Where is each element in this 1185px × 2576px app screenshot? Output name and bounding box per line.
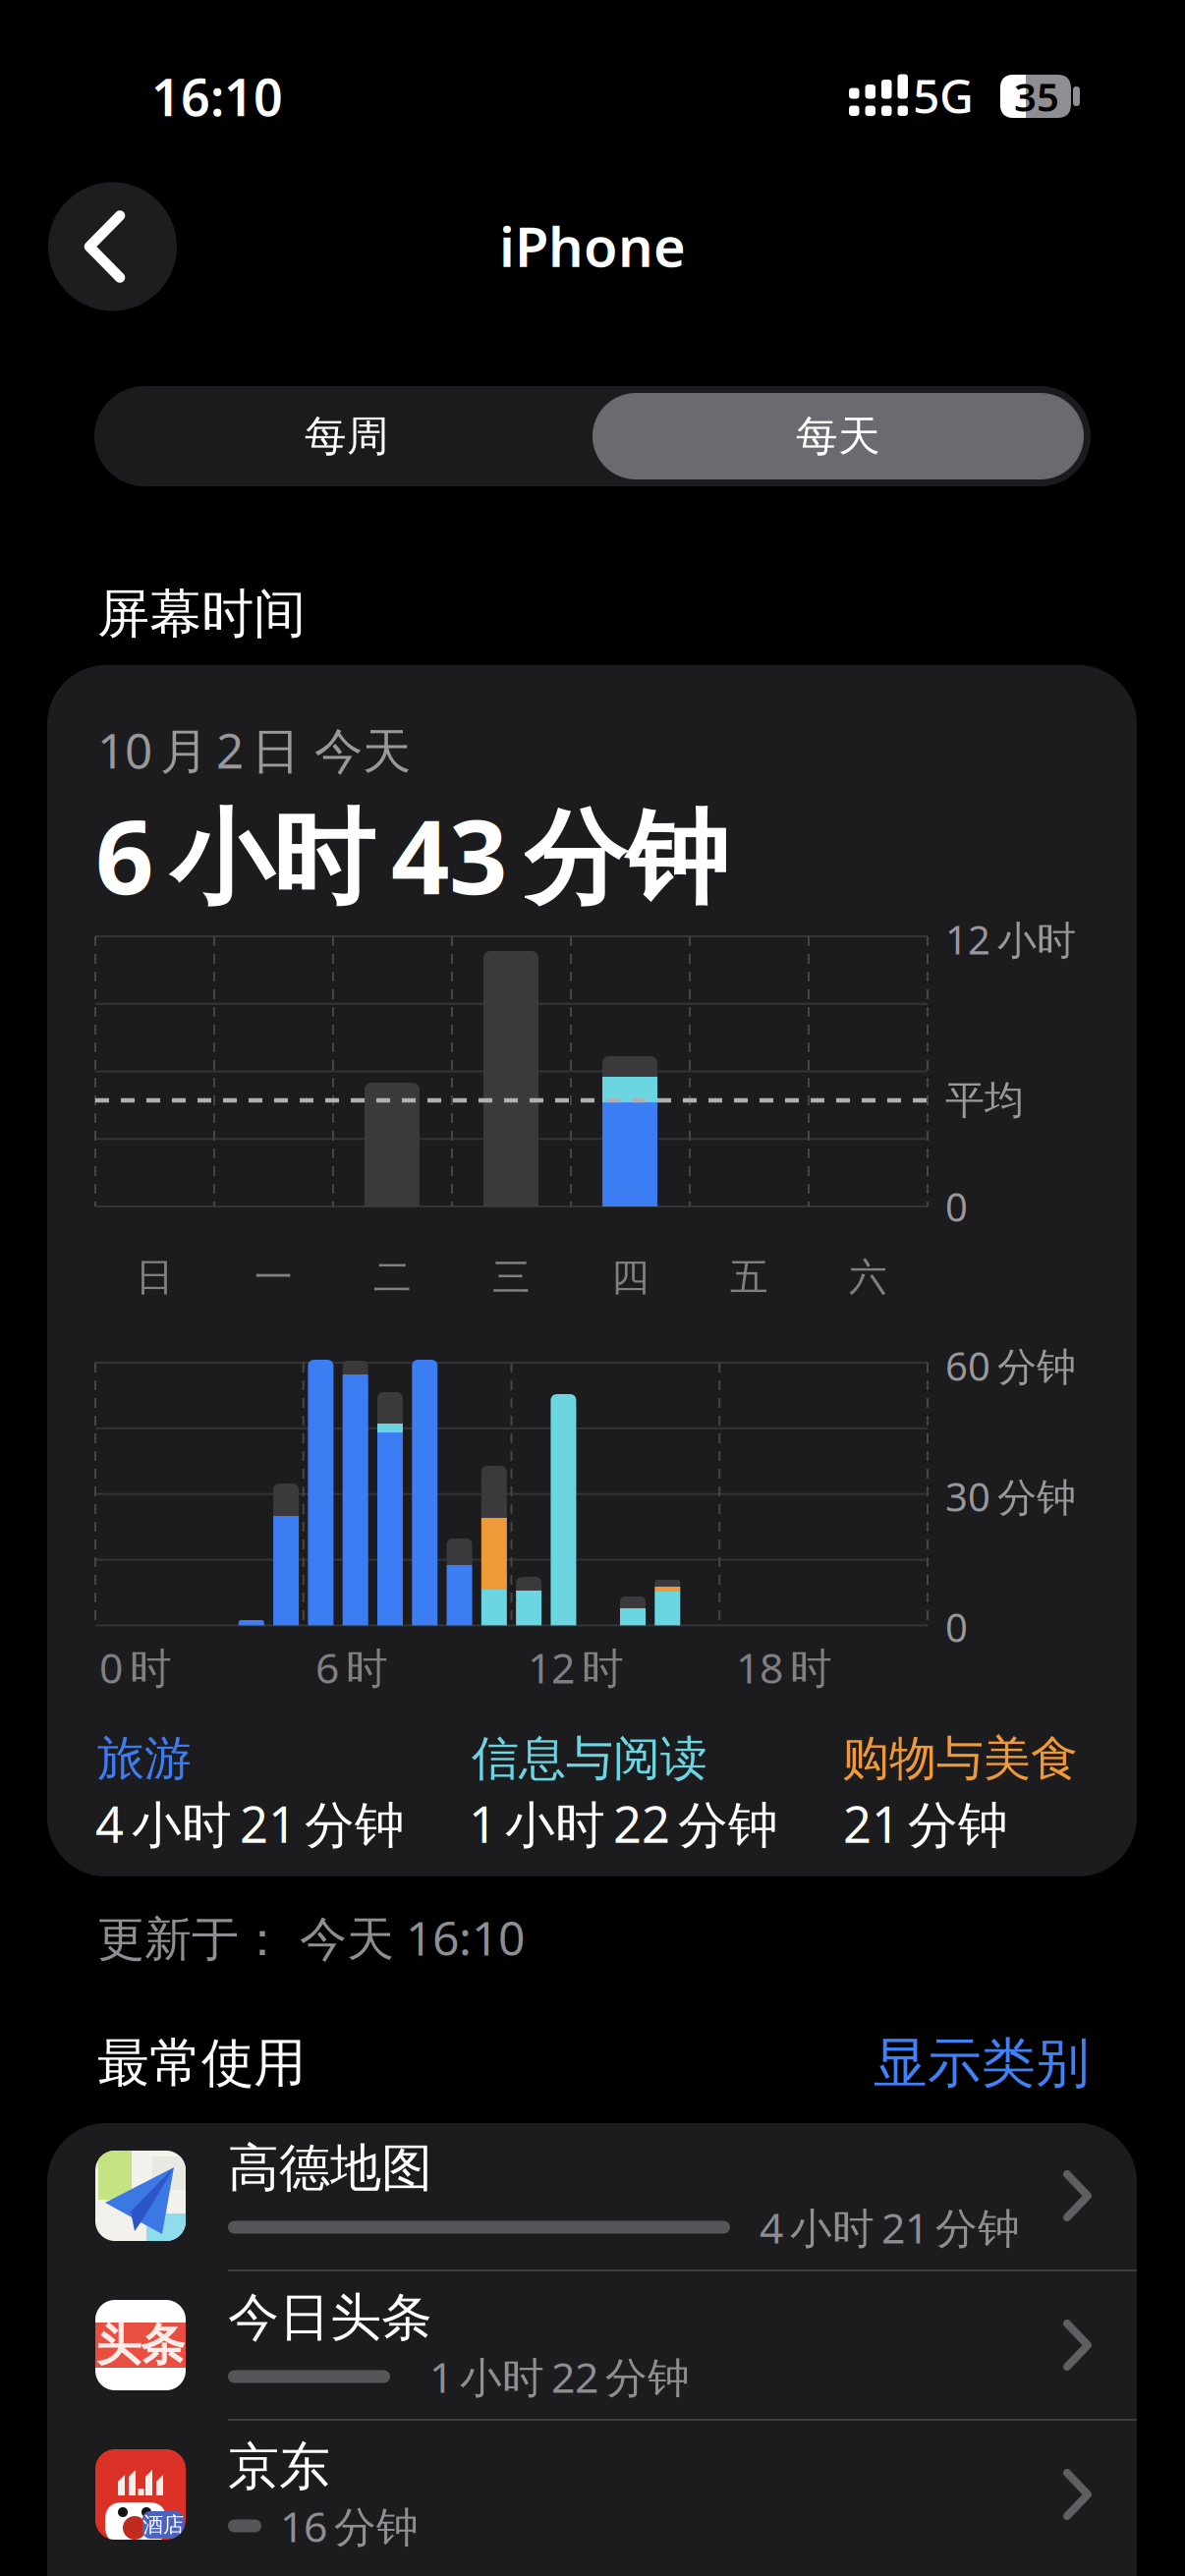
staticText: 日 bbox=[136, 1254, 174, 1301]
staticText: 30 分钟 bbox=[945, 1470, 1076, 1522]
staticText: 0 时 bbox=[99, 1639, 172, 1695]
staticText: 0 bbox=[945, 1180, 968, 1232]
staticText: 旅游 bbox=[97, 1730, 192, 1788]
staticText: 三 bbox=[492, 1254, 531, 1301]
button[interactable]: Back bbox=[48, 182, 177, 311]
staticText: 5G bbox=[913, 64, 974, 127]
staticText: 今日头条 bbox=[228, 2286, 432, 2349]
staticText: 更新于： 今天 16:10 bbox=[97, 1906, 525, 1969]
button[interactable]: 头条 bbox=[47, 2270, 1137, 2420]
staticText: 酒店 bbox=[142, 2512, 184, 2538]
staticText: 京东 bbox=[228, 2436, 330, 2498]
staticText: 四 bbox=[611, 1254, 649, 1301]
staticText: 4 小时 21 分钟 bbox=[95, 1790, 405, 1857]
staticText: 高德地图 bbox=[228, 2137, 432, 2200]
staticText: 16 分钟 bbox=[280, 2498, 419, 2554]
staticText: 18 时 bbox=[736, 1639, 832, 1695]
button[interactable]: 每周 bbox=[101, 393, 592, 479]
staticText: 屏幕时间 bbox=[97, 582, 306, 646]
staticText: 每天 bbox=[796, 410, 880, 462]
staticText: 12 时 bbox=[528, 1639, 624, 1695]
staticText: 6 小时 43 分钟 bbox=[95, 787, 728, 923]
staticText: 一 bbox=[254, 1254, 293, 1301]
staticText: 12 小时 bbox=[945, 913, 1076, 965]
button[interactable]: 高德地图 bbox=[47, 2121, 1137, 2270]
button[interactable]: 每天 bbox=[592, 393, 1084, 479]
button[interactable]: 显示类别 bbox=[0, 0, 1185, 2576]
staticText: 显示类别 bbox=[874, 2030, 1090, 2096]
staticText: 60 分钟 bbox=[945, 1339, 1076, 1392]
button[interactable]: 酒店 bbox=[47, 2420, 1137, 2569]
staticText: 35 bbox=[1014, 70, 1059, 122]
staticText: 六 bbox=[849, 1254, 887, 1301]
staticText: 最常使用 bbox=[97, 2031, 306, 2095]
staticText: 信息与阅读 bbox=[472, 1730, 707, 1788]
staticText: iPhone bbox=[499, 209, 686, 282]
staticText: 购物与美食 bbox=[842, 1730, 1078, 1788]
staticText: 每周 bbox=[305, 410, 389, 462]
staticText: 五 bbox=[730, 1254, 768, 1301]
staticText: 头条 bbox=[96, 2318, 185, 2373]
staticText: 0 bbox=[945, 1601, 968, 1653]
staticText: 二 bbox=[373, 1254, 412, 1301]
staticText: 10 月 2 日 今天 bbox=[97, 717, 411, 782]
staticText: 16:10 bbox=[151, 62, 283, 130]
staticText: 6 时 bbox=[315, 1639, 388, 1695]
staticText: 1 小时 22 分钟 bbox=[429, 2349, 690, 2404]
staticText: 平均 bbox=[945, 1076, 1024, 1124]
staticText: 4 小时 21 分钟 bbox=[760, 2199, 1020, 2255]
staticText: 21 分钟 bbox=[843, 1790, 1008, 1857]
staticText: 1 小时 22 分钟 bbox=[469, 1790, 778, 1857]
